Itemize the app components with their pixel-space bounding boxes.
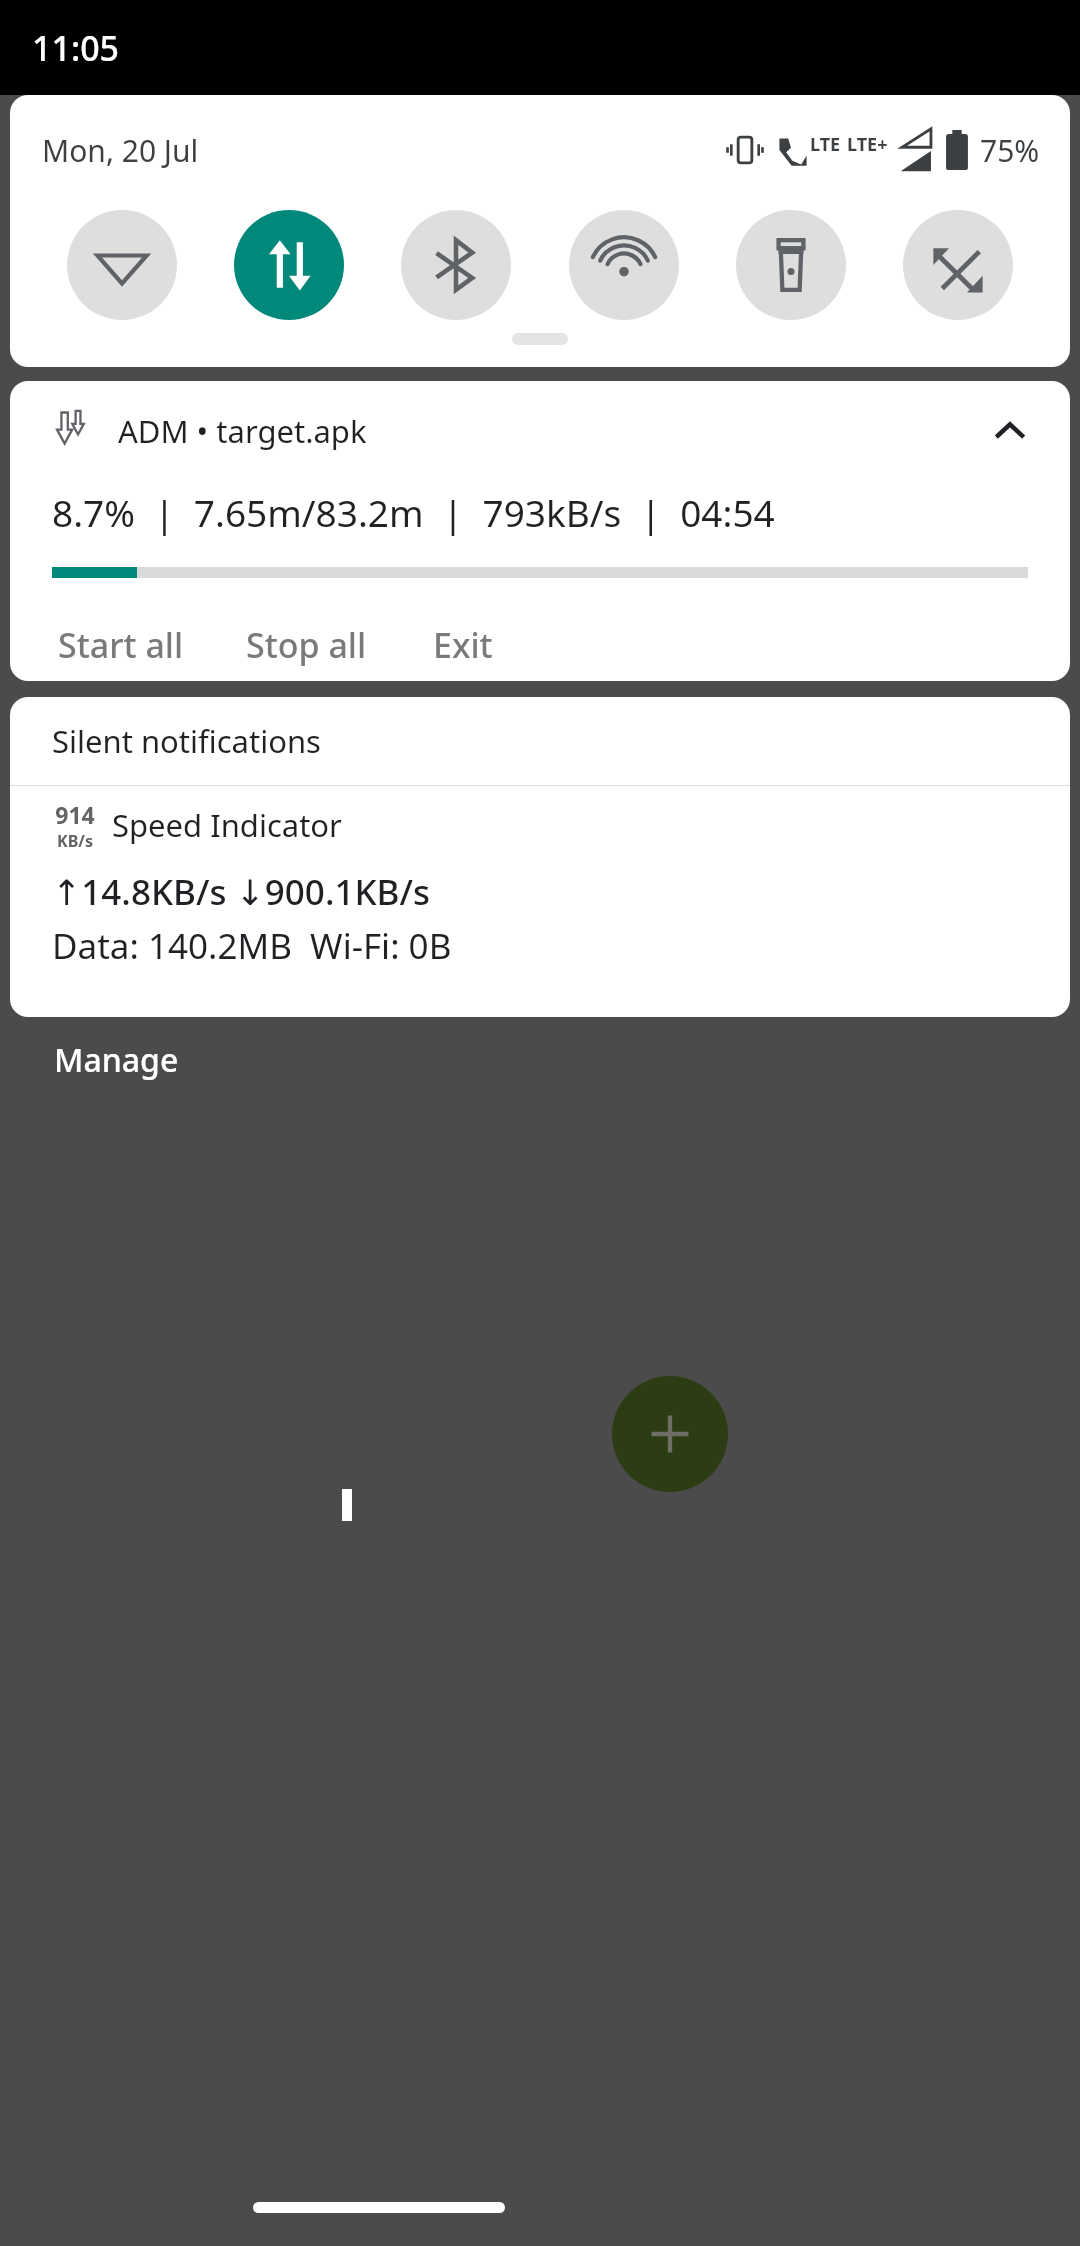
staticText: 8.7% | 7.65m/83.2m | 793kB/s | 04:54 bbox=[52, 487, 775, 537]
button[interactable]: Mobile data bbox=[234, 210, 344, 320]
staticText: Start all bbox=[58, 622, 184, 668]
button[interactable]: Collapse bbox=[980, 401, 1040, 461]
staticText: 11:05 bbox=[32, 25, 120, 71]
button[interactable]: 914 bbox=[10, 786, 1070, 1017]
button[interactable]: Wi-Fi bbox=[67, 210, 177, 320]
button[interactable]: Hotspot bbox=[569, 210, 679, 320]
button[interactable]: Flashlight bbox=[736, 210, 846, 320]
button[interactable]: ADM • target.apk bbox=[10, 381, 1070, 681]
staticText: Exit bbox=[433, 622, 493, 668]
staticText: Silent notifications bbox=[52, 720, 321, 762]
staticText: 75% bbox=[980, 130, 1040, 171]
staticText: Manage bbox=[54, 1038, 179, 1082]
staticText: Data: 140.2MB Wi-Fi: 0B bbox=[52, 922, 452, 970]
button[interactable]: Exit bbox=[427, 612, 499, 678]
staticText: LTE+ bbox=[847, 132, 888, 157]
staticText: Speed Indicator bbox=[112, 804, 342, 846]
button[interactable]: Silent notifications bbox=[10, 697, 1070, 785]
staticText: KB/s bbox=[57, 830, 93, 852]
staticText: LTE bbox=[810, 132, 841, 157]
button[interactable]: Bluetooth bbox=[401, 210, 511, 320]
button[interactable]: Manage bbox=[54, 1038, 179, 1082]
button[interactable]: Add bbox=[612, 1376, 728, 1492]
staticText: ADM • target.apk bbox=[118, 410, 367, 452]
staticText: 914 bbox=[55, 799, 95, 830]
staticText: ↑14.8KB/s ↓900.1KB/s bbox=[52, 868, 430, 916]
staticText: Stop all bbox=[246, 622, 367, 668]
button[interactable]: Start all bbox=[52, 612, 190, 678]
button[interactable]: Auto-rotate bbox=[903, 210, 1013, 320]
staticText: Mon, 20 Jul bbox=[42, 130, 199, 171]
button[interactable]: Stop all bbox=[240, 612, 373, 678]
